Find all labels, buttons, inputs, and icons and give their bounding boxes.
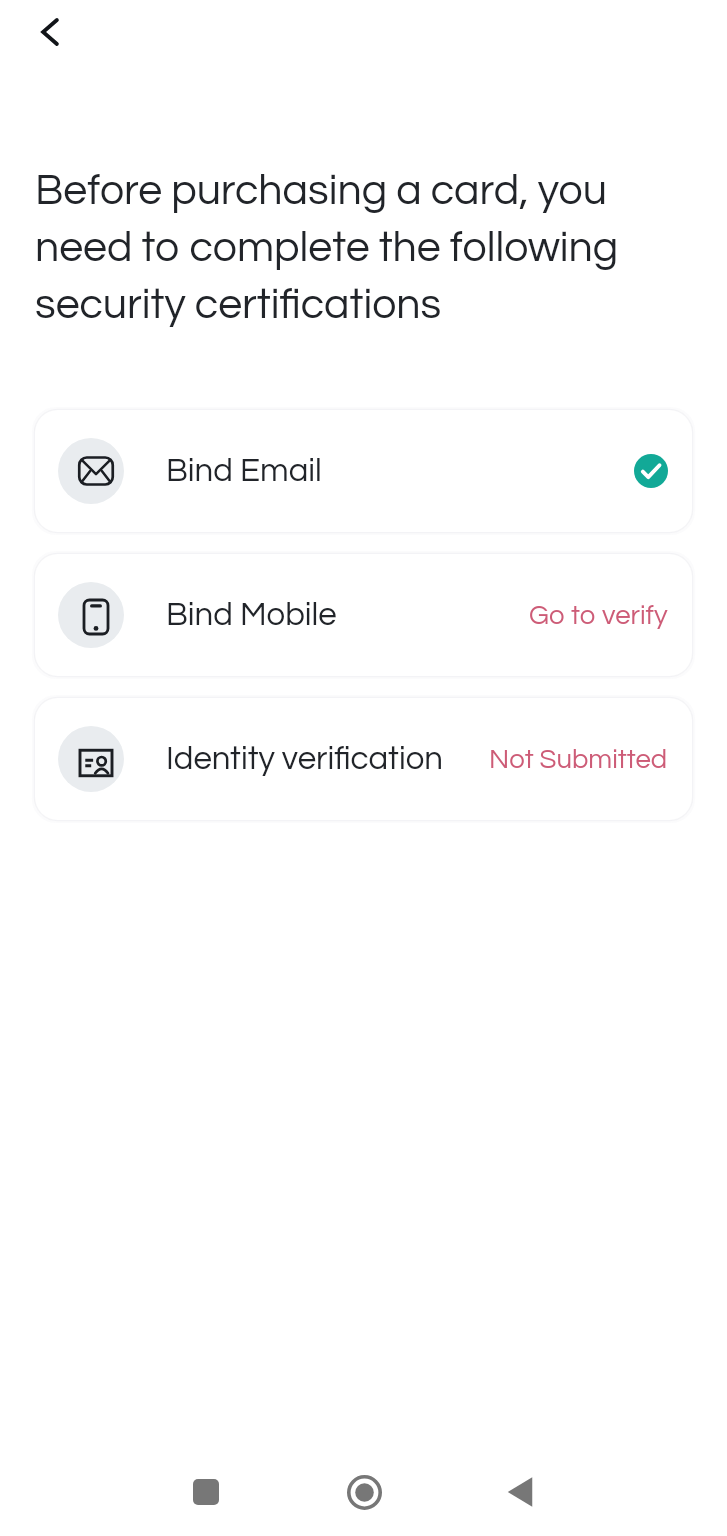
button[interactable]: Bind Email (35, 410, 692, 532)
staticText: Not Submitted (489, 745, 668, 773)
staticText: Before purchasing a card, you need to co… (35, 169, 687, 327)
staticText: Go to verify (529, 601, 668, 629)
button[interactable]: Back (443, 1448, 601, 1536)
button[interactable]: Back (22, 4, 78, 60)
button[interactable]: Home (285, 1448, 443, 1536)
staticText: Identity verification (166, 742, 443, 776)
button[interactable]: Go to verify (529, 601, 668, 629)
button[interactable]: Bind Mobile (35, 554, 692, 676)
button[interactable]: Not Submitted (489, 745, 668, 773)
staticText: Bind Email (166, 454, 322, 488)
staticText: Bind Mobile (166, 598, 337, 632)
button[interactable]: Identity verification (35, 698, 692, 820)
button[interactable]: Recent apps (127, 1448, 285, 1536)
